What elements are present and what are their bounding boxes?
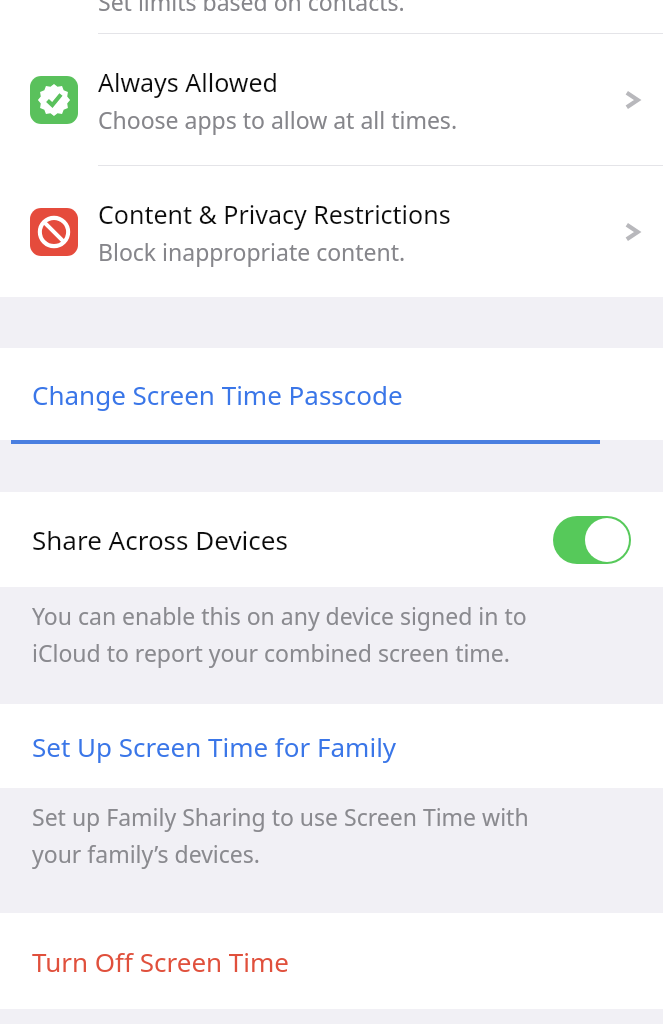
button[interactable]: Always Allowed	[0, 34, 663, 165]
button[interactable]: Set limits based on contacts.	[0, 0, 663, 34]
button[interactable]: Share Across Devices toggle, on	[553, 516, 631, 564]
staticText: Content & Privacy Restrictions	[98, 197, 451, 231]
staticText: iCloud to report your combined screen ti…	[32, 637, 511, 668]
button[interactable]: Share Across Devices	[0, 492, 663, 587]
staticText: Set limits based on contacts.	[98, 0, 405, 17]
staticText: Turn Off Screen Time	[32, 944, 290, 979]
button[interactable]: Turn Off Screen Time	[0, 913, 663, 1009]
staticText: Set up Family Sharing to use Screen Time…	[32, 801, 529, 832]
button[interactable]: Content & Privacy Restrictions	[0, 166, 663, 297]
staticText: Set Up Screen Time for Family	[32, 729, 397, 764]
staticText: your family’s devices.	[32, 838, 260, 869]
staticText: Block inappropriate content.	[98, 236, 406, 267]
staticText: Choose apps to allow at all times.	[98, 104, 458, 135]
button[interactable]: Change Screen Time Passcode	[0, 348, 663, 440]
button[interactable]: Set Up Screen Time for Family	[0, 704, 663, 788]
staticText: You can enable this on any device signed…	[32, 600, 527, 631]
staticText: Always Allowed	[98, 65, 278, 99]
staticText: Change Screen Time Passcode	[32, 377, 403, 412]
staticText: Share Across Devices	[32, 522, 288, 557]
